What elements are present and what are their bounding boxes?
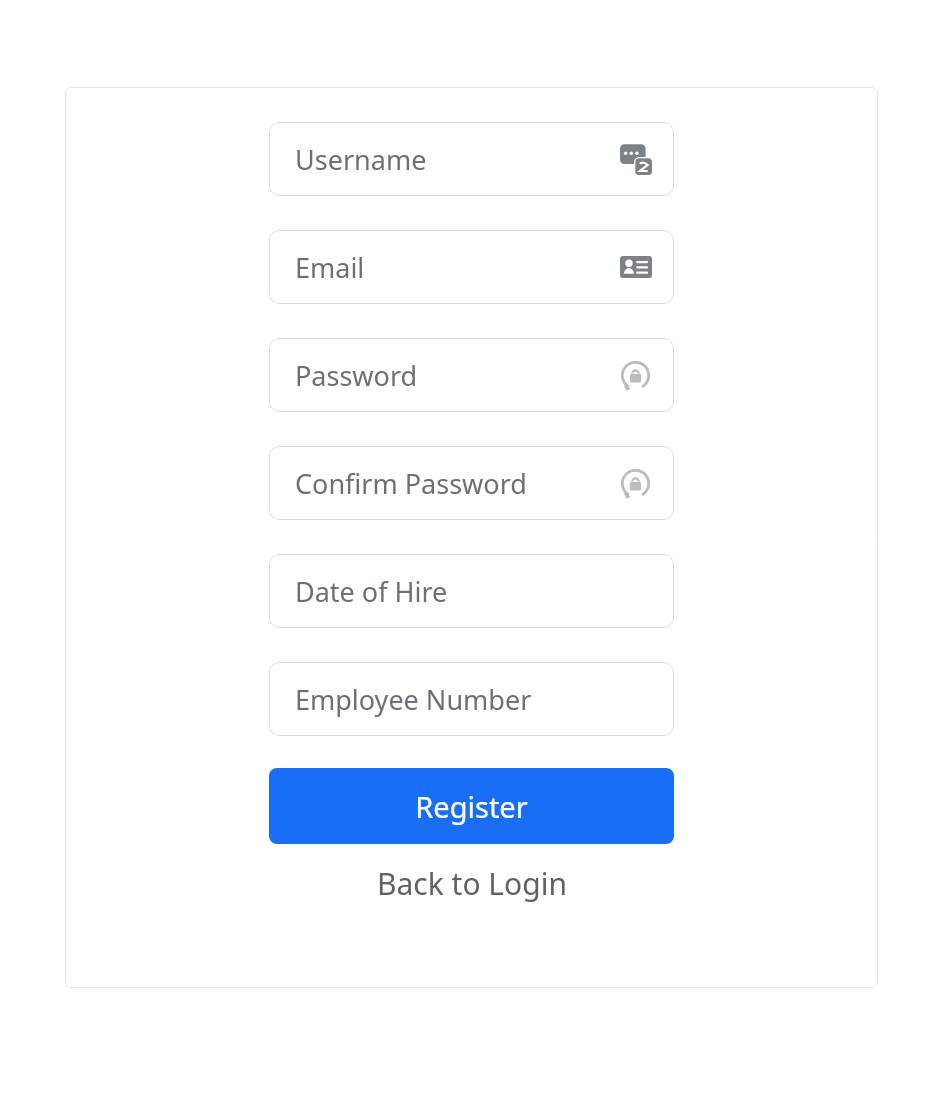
button[interactable]: Employee Number <box>269 662 674 736</box>
staticText: Password <box>295 357 418 394</box>
button[interactable]: Username <box>269 122 674 196</box>
button[interactable]: Confirm Password <box>269 446 674 520</box>
staticText: Employee Number <box>295 681 532 718</box>
staticText: Back to Login <box>377 863 567 904</box>
staticText: Email <box>295 249 365 286</box>
button[interactable]: Register <box>269 768 674 844</box>
button[interactable]: Date of Hire <box>269 554 674 628</box>
button[interactable]: Email <box>269 230 674 304</box>
button[interactable]: Password <box>269 338 674 412</box>
staticText: Register <box>415 787 528 826</box>
button[interactable]: Back to Login <box>269 844 674 922</box>
staticText: Confirm Password <box>295 465 527 502</box>
staticText: Username <box>295 141 427 178</box>
staticText: Date of Hire <box>295 573 448 610</box>
